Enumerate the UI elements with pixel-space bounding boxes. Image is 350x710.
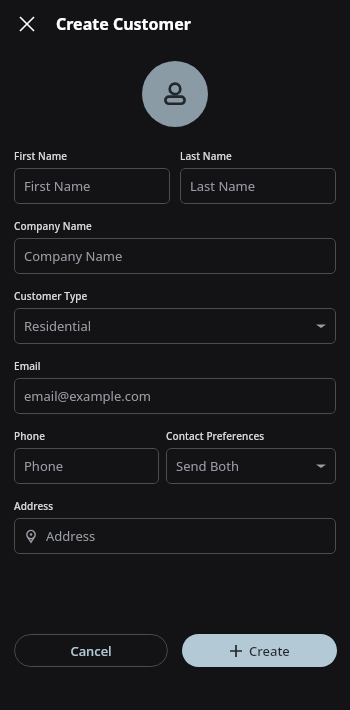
- staticText: Create Customer: [56, 13, 191, 35]
- staticText: Last Name: [180, 149, 232, 163]
- staticText: Company Name: [24, 247, 326, 265]
- staticText: Company Name: [14, 219, 92, 233]
- staticText: Phone: [14, 429, 45, 443]
- staticText: Residential: [24, 317, 316, 335]
- staticText: email@example.com: [24, 387, 326, 405]
- button[interactable]: Phone: [14, 448, 159, 484]
- staticText: First Name: [24, 177, 160, 195]
- staticText: Address: [14, 499, 54, 513]
- button[interactable]: Create: [182, 634, 337, 667]
- staticText: Phone: [24, 457, 149, 475]
- button[interactable]: Send Both: [166, 448, 336, 484]
- staticText: First Name: [14, 149, 68, 163]
- button[interactable]: Customer photo: [142, 61, 208, 127]
- button[interactable]: Last Name: [180, 168, 336, 204]
- staticText: Address: [46, 527, 326, 545]
- button[interactable]: First Name: [14, 168, 170, 204]
- button[interactable]: Close: [14, 11, 40, 37]
- staticText: Contact Preferences: [166, 429, 265, 443]
- staticText: Customer Type: [14, 289, 88, 303]
- button[interactable]: Cancel: [14, 634, 168, 667]
- button[interactable]: email@example.com: [14, 378, 336, 414]
- staticText: Last Name: [190, 177, 326, 195]
- button[interactable]: Residential: [14, 308, 336, 344]
- staticText: Cancel: [70, 642, 112, 660]
- button[interactable]: Company Name: [14, 238, 336, 274]
- staticText: Email: [14, 359, 41, 373]
- staticText: Send Both: [176, 457, 316, 475]
- button[interactable]: Address: [14, 518, 336, 554]
- staticText: Create: [249, 642, 290, 660]
